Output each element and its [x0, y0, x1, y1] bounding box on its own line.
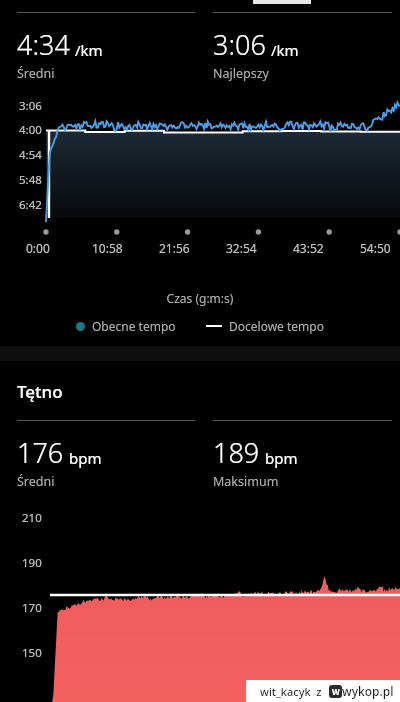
staticText: Maksimum: [213, 473, 279, 490]
staticText: 189: [213, 434, 260, 471]
staticText: 150: [22, 645, 42, 661]
staticText: 54:50: [360, 240, 391, 256]
staticText: Średni: [17, 473, 55, 490]
button[interactable]: Docelowe tempo: [204, 318, 326, 334]
staticText: 21:56: [159, 240, 190, 256]
staticText: 4:34: [17, 26, 70, 63]
staticText: 4:00: [19, 122, 42, 138]
staticText: 32:54: [226, 240, 257, 256]
staticText: Docelowe tempo: [229, 318, 324, 334]
button[interactable]: 3:06: [213, 12, 392, 82]
button[interactable]: 189: [213, 420, 392, 490]
staticText: wit_kacyk z: [260, 684, 322, 699]
staticText: /km: [271, 40, 299, 60]
staticText: Obecne tempo: [92, 318, 176, 334]
staticText: 43:52: [293, 240, 324, 256]
staticText: 210: [22, 510, 42, 526]
staticText: 3:06: [213, 26, 266, 63]
staticText: /km: [75, 40, 103, 60]
staticText: 10:58: [92, 240, 123, 256]
staticText: Średni: [17, 65, 55, 82]
staticText: 176: [17, 434, 64, 471]
button[interactable]: 4:34: [17, 12, 195, 82]
staticText: Tętno: [17, 380, 63, 403]
button[interactable]: 176: [17, 420, 195, 490]
staticText: 4:54: [19, 147, 42, 163]
staticText: bpm: [69, 448, 102, 468]
staticText: bpm: [265, 448, 298, 468]
staticText: 3:06: [19, 98, 42, 114]
button[interactable]: Obecne tempo: [74, 318, 178, 334]
staticText: 6:42: [19, 197, 42, 213]
staticText: W: [332, 686, 340, 697]
staticText: Czas (g:m:s): [0, 290, 400, 306]
staticText: 5:48: [19, 172, 42, 188]
staticText: 190: [22, 555, 42, 571]
staticText: wykop.pl: [342, 683, 394, 699]
staticText: Najlepszy: [213, 65, 269, 82]
staticText: 0:00: [26, 240, 50, 256]
staticText: 170: [22, 600, 42, 616]
